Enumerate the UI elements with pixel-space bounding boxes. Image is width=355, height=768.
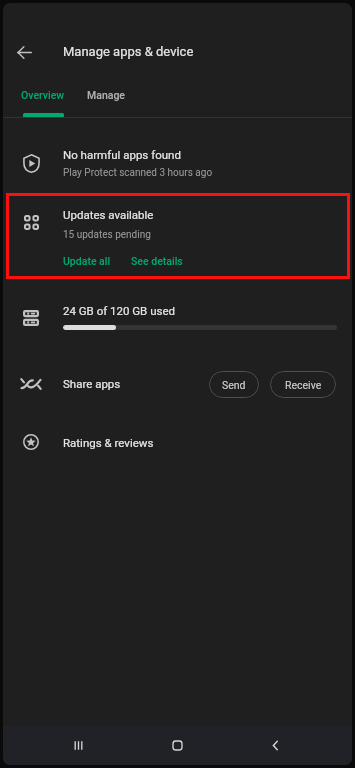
button[interactable]: See details bbox=[129, 253, 185, 269]
button[interactable]: Recent apps bbox=[60, 727, 96, 763]
button[interactable]: No harmful apps found bbox=[3, 133, 352, 189]
staticText: Receive bbox=[285, 379, 322, 391]
staticText: Manage apps & device bbox=[63, 44, 194, 59]
button[interactable]: Manage bbox=[83, 77, 129, 113]
staticText: Ratings & reviews bbox=[63, 436, 154, 449]
button[interactable]: Send bbox=[209, 371, 259, 398]
staticText: Update all bbox=[63, 255, 111, 267]
staticText: 24 GB of 120 GB used bbox=[63, 304, 175, 317]
button[interactable]: Back bbox=[3, 30, 46, 74]
button[interactable]: Home bbox=[159, 727, 195, 763]
staticText: No harmful apps found bbox=[63, 148, 181, 161]
button[interactable]: Share apps bbox=[3, 361, 352, 417]
staticText: Share apps bbox=[63, 377, 121, 390]
staticText: 15 updates pending bbox=[63, 229, 151, 241]
button[interactable]: Back bbox=[257, 727, 293, 763]
staticText: Overview bbox=[21, 89, 65, 101]
button[interactable]: 24 GB of 120 GB used bbox=[3, 291, 352, 346]
button[interactable]: Overview bbox=[16, 77, 70, 113]
button[interactable]: Receive bbox=[270, 371, 336, 398]
staticText: See details bbox=[131, 255, 183, 267]
staticText: Play Protect scanned 3 hours ago bbox=[63, 167, 213, 179]
staticText: Updates available bbox=[63, 208, 154, 221]
staticText: Send bbox=[222, 379, 246, 391]
button[interactable]: Update all bbox=[61, 253, 113, 269]
button[interactable]: Ratings & reviews bbox=[3, 420, 352, 474]
staticText: Manage bbox=[87, 89, 125, 101]
